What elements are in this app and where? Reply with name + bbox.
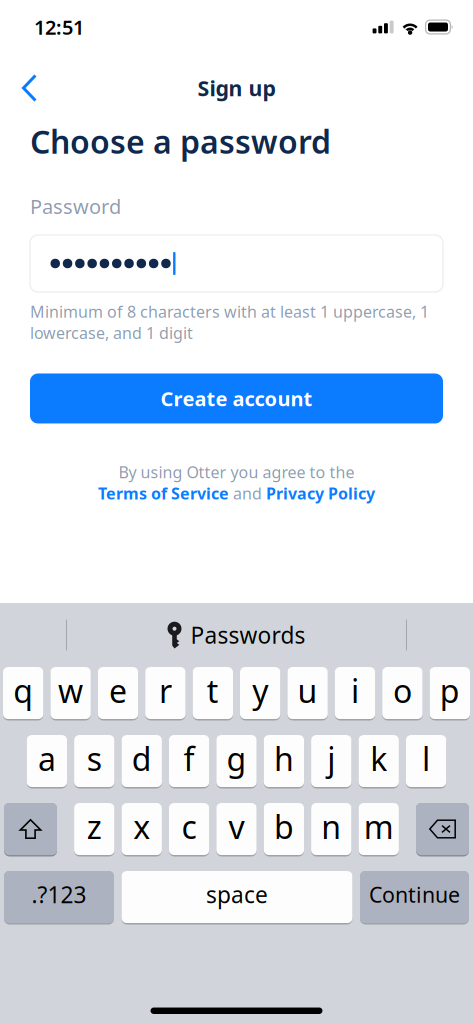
button[interactable]: w [50, 667, 91, 720]
button[interactable]: f [169, 735, 209, 788]
staticText: .?123 [31, 879, 86, 909]
staticText: Passwords [190, 620, 305, 650]
staticText: Create account [160, 385, 312, 412]
button[interactable]: v [216, 803, 257, 856]
staticText: s [87, 737, 102, 780]
staticText: Minimum of 8 characters with at least 1 … [30, 301, 429, 343]
staticText: Privacy Policy [266, 483, 375, 504]
staticText: 12:51 [34, 14, 84, 40]
button[interactable]: Passwords [147, 613, 325, 657]
button[interactable]: a [27, 735, 67, 788]
staticText: e [109, 669, 127, 712]
staticText: f [184, 737, 195, 780]
button[interactable]: q [3, 667, 43, 720]
staticText: v [228, 805, 244, 848]
button[interactable]: k [358, 735, 399, 788]
staticText: h [274, 737, 294, 780]
staticText: n [321, 805, 341, 848]
button[interactable]: s [74, 735, 114, 788]
button[interactable]: e [98, 667, 138, 720]
button[interactable]: x [121, 803, 162, 856]
button[interactable]: r [145, 667, 186, 720]
button[interactable]: Delete [416, 803, 469, 856]
staticText: Continue [369, 880, 460, 909]
staticText: r [159, 669, 172, 712]
button[interactable]: t [193, 667, 233, 720]
staticText: c [182, 805, 197, 848]
staticText: z [87, 805, 102, 848]
staticText: Terms of Service [98, 483, 229, 504]
button[interactable]: Privacy Policy [266, 483, 375, 504]
staticText: t [207, 669, 219, 712]
button[interactable]: z [74, 803, 114, 856]
staticText: b [274, 805, 294, 848]
staticText: p [440, 669, 460, 712]
button[interactable]: Create account [30, 373, 443, 423]
button[interactable]: Terms of Service [98, 483, 229, 504]
staticText: q [13, 669, 33, 712]
staticText: Password [30, 193, 121, 220]
button[interactable]: m [358, 803, 399, 856]
staticText: Sign up [197, 74, 275, 102]
staticText: By using Otter you agree to the [118, 461, 354, 483]
button[interactable]: n [311, 803, 351, 856]
staticText: Choose a password [30, 120, 331, 162]
staticText: y [252, 669, 268, 712]
staticText: and [233, 483, 262, 504]
staticText: o [393, 669, 412, 712]
staticText: w [58, 669, 83, 712]
button[interactable]: p [430, 667, 470, 720]
button[interactable]: Back [0, 65, 51, 111]
staticText: k [370, 737, 387, 780]
staticText: m [364, 805, 394, 848]
staticText: l [422, 737, 430, 780]
button[interactable]: l [406, 735, 446, 788]
staticText: i [351, 669, 359, 712]
button[interactable]: g [216, 735, 257, 788]
button[interactable]: b [264, 803, 304, 856]
button[interactable]: o [382, 667, 423, 720]
button[interactable]: d [121, 735, 162, 788]
staticText: x [133, 805, 150, 848]
button[interactable]: Shift [4, 803, 57, 856]
button[interactable]: h [264, 735, 304, 788]
staticText: space [206, 879, 268, 909]
button[interactable]: u [287, 667, 328, 720]
staticText: j [327, 737, 335, 780]
staticText: d [132, 737, 152, 780]
button[interactable]: i [335, 667, 375, 720]
button[interactable]: .?123 [4, 871, 114, 924]
button[interactable]: y [240, 667, 280, 720]
staticText: g [226, 737, 246, 780]
button[interactable]: space [121, 871, 352, 924]
button[interactable]: c [169, 803, 209, 856]
staticText: a [38, 737, 56, 780]
staticText: u [298, 669, 318, 712]
button[interactable]: j [311, 735, 351, 788]
button[interactable]: Continue [360, 871, 469, 924]
